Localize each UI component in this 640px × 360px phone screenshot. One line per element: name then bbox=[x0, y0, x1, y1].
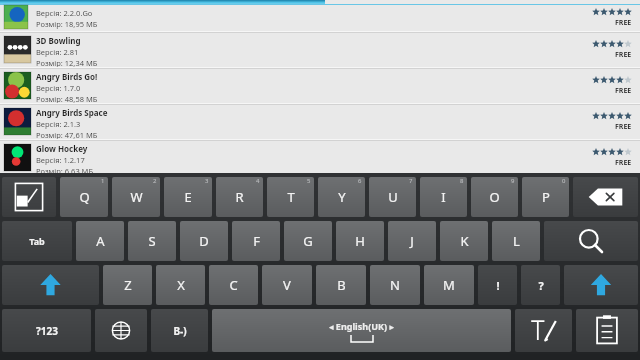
button[interactable]: R bbox=[216, 177, 263, 217]
staticText: H bbox=[355, 232, 365, 250]
button[interactable]: N bbox=[370, 265, 420, 305]
staticText: Розмір: 12,34 МБ bbox=[36, 58, 98, 67]
button[interactable]: ! bbox=[478, 265, 517, 305]
button[interactable]: X bbox=[156, 265, 205, 305]
button[interactable]: T bbox=[267, 177, 314, 217]
button[interactable]: S bbox=[128, 221, 176, 261]
button[interactable]: V bbox=[262, 265, 312, 305]
staticText: Версія: 2.81 bbox=[36, 47, 79, 57]
button[interactable]: H bbox=[336, 221, 384, 261]
staticText: Версія: 1.2.17 bbox=[36, 155, 85, 165]
staticText: Q bbox=[79, 188, 90, 206]
button[interactable]: Search bbox=[544, 221, 638, 261]
button[interactable]: 3D Bowling bbox=[0, 33, 640, 69]
staticText: F bbox=[253, 232, 260, 250]
staticText: Z bbox=[124, 276, 132, 294]
staticText: Розмір: 47,61 МБ bbox=[36, 130, 98, 139]
staticText: B bbox=[337, 276, 346, 294]
staticText: X bbox=[177, 276, 185, 294]
staticText: T bbox=[287, 188, 295, 206]
staticText: 2 bbox=[153, 177, 157, 185]
button[interactable]: J bbox=[388, 221, 436, 261]
staticText: ! bbox=[496, 278, 500, 293]
button[interactable]: W bbox=[112, 177, 160, 217]
staticText: Angry Birds Go! bbox=[36, 71, 98, 82]
button[interactable]: ?123 bbox=[2, 309, 91, 352]
staticText: 3D Bowling bbox=[36, 35, 81, 46]
staticText: 7 bbox=[409, 177, 413, 185]
staticText: 8 bbox=[460, 177, 464, 185]
button[interactable]: G bbox=[284, 221, 332, 261]
button[interactable]: Z bbox=[103, 265, 152, 305]
button[interactable]: I bbox=[420, 177, 467, 217]
staticText: A bbox=[96, 232, 105, 250]
staticText: ? bbox=[538, 278, 544, 293]
staticText: K bbox=[460, 232, 469, 250]
button[interactable]: Glow Hockey bbox=[0, 141, 640, 177]
staticText: Версія: 2.2.0.Go bbox=[36, 8, 93, 18]
staticText: FREE bbox=[615, 50, 632, 60]
staticText: FREE bbox=[615, 158, 632, 168]
staticText: Y bbox=[338, 188, 346, 206]
staticText: ?123 bbox=[36, 324, 58, 338]
button[interactable]: Q bbox=[60, 177, 108, 217]
staticText: S bbox=[148, 232, 156, 250]
staticText: Angry Birds Space bbox=[36, 107, 108, 118]
button[interactable]: Angry Birds Go! bbox=[0, 69, 640, 105]
button[interactable]: ? bbox=[521, 265, 560, 305]
button[interactable]: Clipboard bbox=[576, 309, 638, 352]
staticText: R bbox=[235, 188, 244, 206]
staticText: N bbox=[390, 276, 400, 294]
button[interactable]: Tab bbox=[2, 221, 72, 261]
button[interactable]: Shift bbox=[2, 265, 99, 305]
staticText: C bbox=[229, 276, 238, 294]
staticText: Версія: 1.7.0 bbox=[36, 83, 81, 93]
staticText: W bbox=[130, 188, 143, 206]
staticText: Glow Hockey bbox=[36, 143, 88, 154]
staticText: 5 bbox=[307, 177, 311, 185]
staticText: D bbox=[199, 232, 209, 250]
button[interactable]: Angry Birds Space bbox=[0, 105, 640, 141]
staticText: E bbox=[184, 188, 192, 206]
staticText: B-) bbox=[173, 324, 187, 338]
button[interactable]: D bbox=[180, 221, 228, 261]
button[interactable]: Версія: 2.2.0.Go bbox=[0, 5, 640, 33]
button[interactable]: Y bbox=[318, 177, 365, 217]
button[interactable]: M bbox=[424, 265, 474, 305]
staticText: L bbox=[513, 232, 520, 250]
staticText: FREE bbox=[615, 122, 632, 132]
staticText: FREE bbox=[615, 86, 632, 96]
button[interactable]: C bbox=[209, 265, 258, 305]
button[interactable]: Hide keyboard bbox=[2, 177, 56, 217]
staticText: ◂ English(UK) ▸ bbox=[329, 320, 394, 332]
staticText: J bbox=[410, 232, 414, 250]
button[interactable]: Handwriting bbox=[515, 309, 572, 352]
button[interactable]: B-) bbox=[151, 309, 208, 352]
button[interactable]: Backspace bbox=[573, 177, 638, 217]
staticText: 1 bbox=[101, 177, 105, 185]
button[interactable]: P bbox=[522, 177, 569, 217]
staticText: 6 bbox=[358, 177, 362, 185]
button[interactable]: F bbox=[232, 221, 280, 261]
button[interactable]: Language bbox=[95, 309, 147, 352]
staticText: G bbox=[303, 232, 313, 250]
staticText: Розмір: 48,58 МБ bbox=[36, 94, 98, 103]
button[interactable]: A bbox=[76, 221, 124, 261]
staticText: 0 bbox=[562, 177, 566, 185]
staticText: 3 bbox=[205, 177, 209, 185]
button[interactable]: E bbox=[164, 177, 212, 217]
button[interactable]: U bbox=[369, 177, 416, 217]
staticText: Версія: 2.1.3 bbox=[36, 119, 81, 129]
button[interactable]: B bbox=[316, 265, 366, 305]
staticText: M bbox=[443, 276, 455, 294]
staticText: I bbox=[441, 188, 446, 206]
button[interactable]: O bbox=[471, 177, 518, 217]
button[interactable]: Shift bbox=[564, 265, 638, 305]
button[interactable]: K bbox=[440, 221, 488, 261]
staticText: Розмір: 18,95 МБ bbox=[36, 19, 98, 29]
staticText: O bbox=[489, 188, 500, 206]
button[interactable]: ◂ English(UK) ▸ bbox=[212, 309, 511, 352]
button[interactable]: L bbox=[492, 221, 540, 261]
staticText: P bbox=[542, 188, 550, 206]
staticText: Розмір: 6,63 МБ bbox=[36, 166, 94, 175]
